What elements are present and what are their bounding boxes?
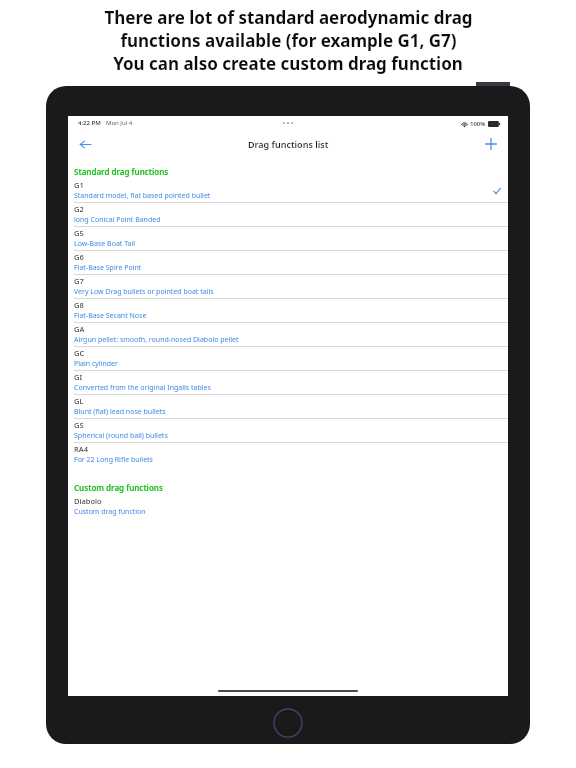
staticText: 4:22 PM bbox=[78, 119, 101, 127]
button[interactable]: GI bbox=[68, 371, 508, 394]
button[interactable]: G1 bbox=[68, 179, 508, 202]
staticText: G5 bbox=[74, 228, 84, 238]
button[interactable]: G8 bbox=[68, 299, 508, 322]
staticText: Flat-Base Secant Nose bbox=[74, 311, 147, 321]
button[interactable]: Back bbox=[74, 133, 96, 155]
staticText: Airgun pellet: smooth, round-nosed Diabo… bbox=[74, 335, 239, 345]
button[interactable]: GL bbox=[68, 395, 508, 418]
staticText: GC bbox=[74, 348, 85, 358]
staticText: GS bbox=[74, 420, 84, 430]
staticText: Spherical (round ball) bullets bbox=[74, 431, 168, 441]
button[interactable]: GA bbox=[68, 323, 508, 346]
staticText: GL bbox=[74, 396, 84, 406]
button[interactable]: GS bbox=[68, 419, 508, 442]
button[interactable]: G6 bbox=[68, 251, 508, 274]
staticText: G8 bbox=[74, 300, 84, 310]
staticText: For 22 Long Rifle bullets bbox=[74, 455, 153, 465]
staticText: Custom drag function bbox=[74, 507, 146, 517]
staticText: GA bbox=[74, 324, 85, 334]
button[interactable]: G7 bbox=[68, 275, 508, 298]
button[interactable]: G2 bbox=[68, 203, 508, 226]
staticText: Mon Jul 4 bbox=[106, 119, 133, 127]
staticText: Plain cylinder bbox=[74, 359, 118, 369]
staticText: There are lot of standard aerodynamic dr… bbox=[104, 6, 473, 29]
staticText: G2 bbox=[74, 204, 84, 214]
button[interactable]: G5 bbox=[68, 227, 508, 250]
staticText: Standard model, flat based pointed bulle… bbox=[74, 191, 211, 201]
staticText: functions available (for example G1, G7) bbox=[120, 29, 457, 52]
staticText: Flat-Base Spire Point bbox=[74, 263, 142, 273]
staticText: Converted from the original Ingalls tabl… bbox=[74, 383, 211, 393]
staticText: Drag functions list bbox=[248, 138, 329, 150]
staticText: G6 bbox=[74, 252, 84, 262]
staticText: G1 bbox=[74, 180, 84, 190]
button[interactable]: RA4 bbox=[68, 443, 508, 466]
button[interactable]: Add drag function bbox=[480, 133, 502, 155]
staticText: RA4 bbox=[74, 444, 88, 454]
staticText: Standard drag functions bbox=[74, 166, 169, 177]
staticText: long Conical Point Banded bbox=[74, 215, 161, 225]
staticText: G7 bbox=[74, 276, 84, 286]
staticText: You can also create custom drag function bbox=[113, 52, 463, 75]
button[interactable]: Diabolo bbox=[68, 495, 508, 518]
button[interactable]: GC bbox=[68, 347, 508, 370]
staticText: Low-Base Boat Tail bbox=[74, 239, 136, 249]
staticText: Blunt (flat) lead nose bullets bbox=[74, 407, 166, 417]
staticText: Very Low Drag bullets or pointed boat ta… bbox=[74, 287, 214, 297]
staticText: Custom drag functions bbox=[74, 482, 163, 493]
staticText: 100% bbox=[470, 120, 486, 128]
staticText: Diabolo bbox=[74, 496, 102, 506]
staticText: GI bbox=[74, 372, 83, 382]
